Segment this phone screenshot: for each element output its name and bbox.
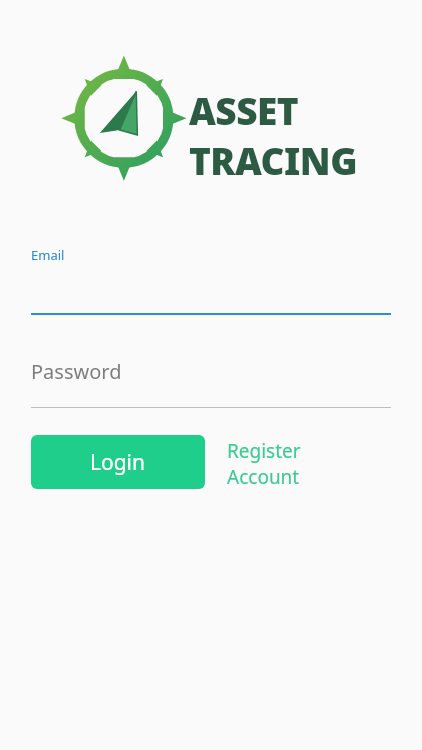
- button[interactable]: Login: [31, 435, 205, 489]
- staticText: Account: [227, 464, 300, 490]
- button[interactable]: Register: [227, 438, 337, 490]
- button[interactable]: Password: [31, 358, 391, 408]
- staticText: Password: [31, 358, 122, 385]
- staticText: ASSET: [189, 85, 299, 135]
- button[interactable]: Email: [31, 246, 391, 315]
- staticText: Register: [227, 438, 301, 464]
- staticText: TRACING: [189, 135, 358, 185]
- staticText: Email: [31, 246, 65, 264]
- staticText: Login: [90, 448, 146, 477]
